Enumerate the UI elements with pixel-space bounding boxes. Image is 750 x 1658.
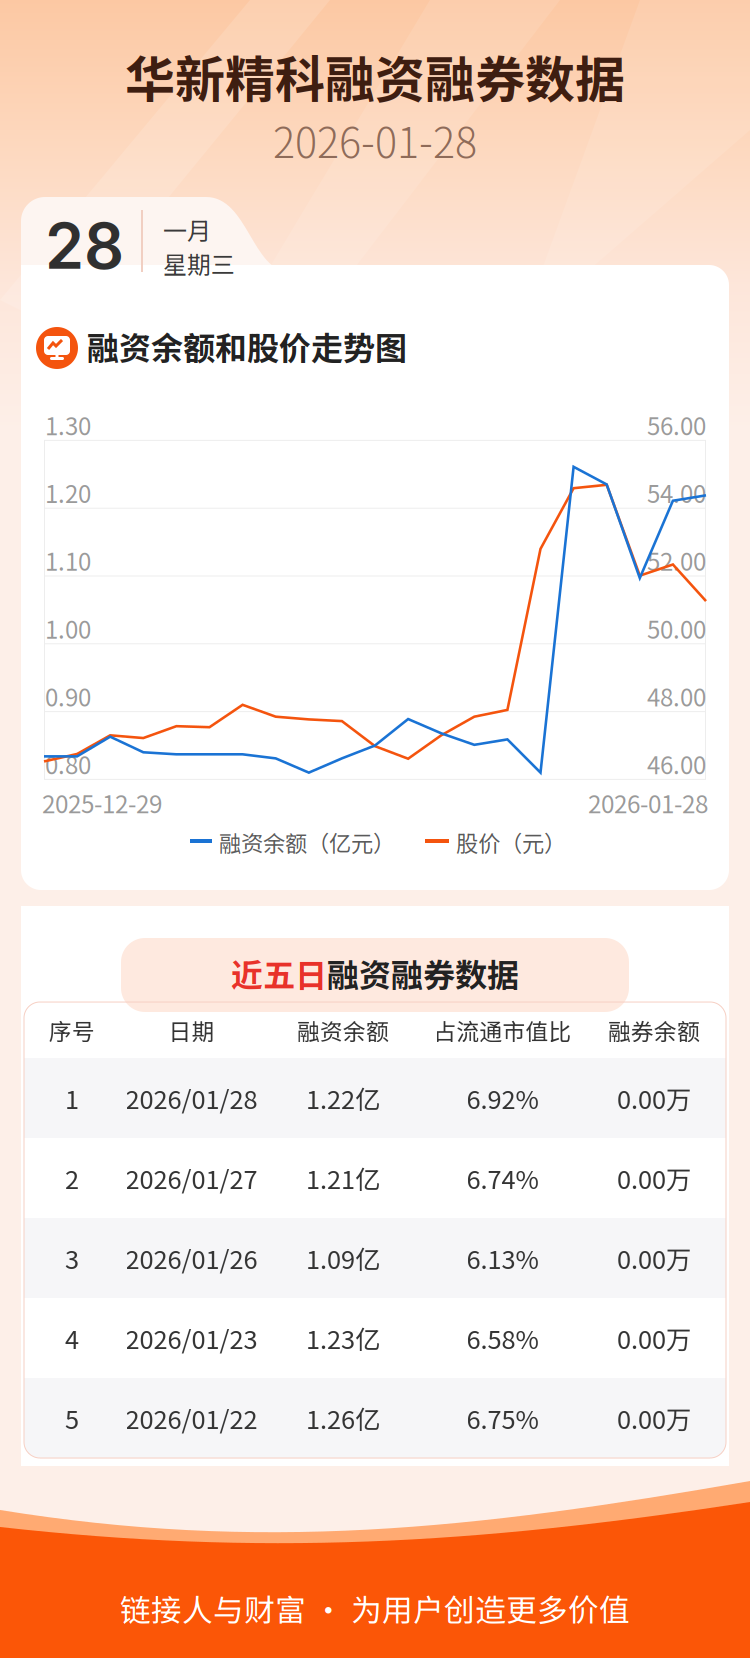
staticText: 华新精科融资融券数据 (125, 40, 625, 112)
staticText: 占流通市值比 (433, 1014, 571, 1046)
staticText: 1.26亿 (306, 1400, 380, 1436)
staticText: 6.74% (466, 1160, 538, 1196)
staticText: 6.92% (466, 1080, 538, 1116)
staticText: 近五日 (231, 950, 327, 996)
staticText: 1.30 (45, 407, 91, 442)
staticText: 1 (65, 1080, 79, 1116)
staticText: 0.00万 (617, 1160, 691, 1196)
staticText: 2026/01/27 (125, 1160, 257, 1196)
staticText: 2026/01/28 (125, 1080, 257, 1116)
staticText: 1.20 (45, 475, 91, 510)
staticText: 54.00 (647, 475, 706, 510)
staticText: 0.00万 (617, 1080, 691, 1116)
staticText: 融资余额和股价走势图 (87, 323, 407, 369)
staticText: 2025-12-29 (42, 785, 162, 820)
staticText: 4 (65, 1320, 79, 1356)
staticText: 1.10 (45, 543, 91, 578)
staticText: 1.21亿 (306, 1160, 380, 1196)
staticText: 50.00 (647, 611, 706, 646)
staticText: 1.22亿 (306, 1080, 380, 1116)
staticText: 1.00 (45, 611, 91, 646)
staticText: 2026/01/23 (125, 1320, 257, 1356)
staticText: 0.00万 (617, 1400, 691, 1436)
staticText: 2026-01-28 (273, 110, 477, 170)
staticText: 融资余额（亿元） (219, 826, 395, 858)
staticText: 融券余额 (608, 1014, 700, 1046)
staticText: 融资余额 (297, 1014, 389, 1046)
staticText: 链接人与财富 · 为用户创造更多价值 (120, 1586, 630, 1630)
staticText: 0.00万 (617, 1320, 691, 1356)
staticText: 48.00 (647, 679, 706, 713)
staticText: 1.09亿 (306, 1240, 380, 1276)
staticText: 日期 (168, 1014, 214, 1046)
staticText: 56.00 (647, 407, 706, 442)
staticText: 序号 (49, 1014, 95, 1046)
staticText: 股价（元） (456, 826, 566, 858)
staticText: 6.75% (466, 1400, 538, 1436)
staticText: 融资融券数据 (327, 950, 519, 996)
staticText: 5 (65, 1400, 79, 1436)
staticText: 2026-01-28 (588, 785, 708, 820)
staticText: 2 (65, 1160, 79, 1196)
staticText: 46.00 (647, 746, 706, 781)
staticText: 52.00 (647, 543, 706, 578)
staticText: 0.00万 (617, 1240, 691, 1276)
staticText: 2026/01/26 (125, 1240, 257, 1276)
staticText: 一月 (163, 212, 211, 247)
staticText: 星期三 (163, 246, 235, 281)
staticText: 3 (65, 1240, 79, 1276)
staticText: 28 (45, 208, 124, 284)
staticText: 1.23亿 (306, 1320, 380, 1356)
staticText: 6.13% (466, 1240, 538, 1276)
staticText: 2026/01/22 (125, 1400, 257, 1436)
staticText: 0.90 (45, 679, 91, 713)
staticText: 6.58% (466, 1320, 538, 1356)
staticText: 0.80 (45, 746, 91, 781)
